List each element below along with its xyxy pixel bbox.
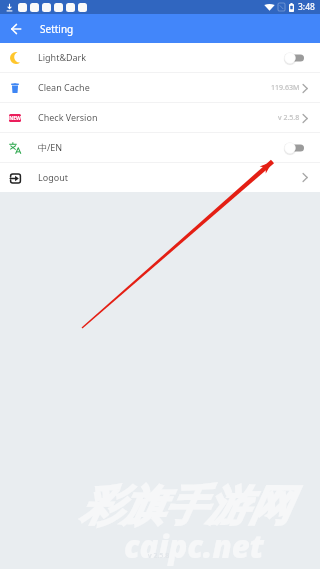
button[interactable]: Back xyxy=(1,14,30,43)
button[interactable]: Toggle xyxy=(284,51,308,65)
staticText: Clean Cache xyxy=(38,81,90,93)
staticText: 中/EN xyxy=(38,141,63,153)
staticText: NEW xyxy=(9,115,21,122)
staticText: caipc.net xyxy=(124,525,264,567)
button[interactable]: Clean Cache xyxy=(0,73,320,102)
staticText: 119.63M xyxy=(271,83,300,93)
staticText: Logout xyxy=(38,171,68,183)
staticText: 彩旗手游网 xyxy=(80,480,290,533)
button[interactable]: Logout xyxy=(0,163,320,192)
button[interactable]: Toggle xyxy=(284,141,308,155)
button[interactable]: Light&Dark xyxy=(0,43,320,72)
staticText: 3:48 xyxy=(298,1,315,13)
staticText: v 2.5.8 xyxy=(148,551,170,561)
staticText: v 2.5.8 xyxy=(278,113,300,123)
staticText: Light&Dark xyxy=(38,51,87,63)
staticText: Check Version xyxy=(38,111,98,123)
staticText: Setting xyxy=(40,22,74,36)
button[interactable]: NEW xyxy=(0,103,320,132)
button[interactable]: 中/EN xyxy=(0,133,320,162)
